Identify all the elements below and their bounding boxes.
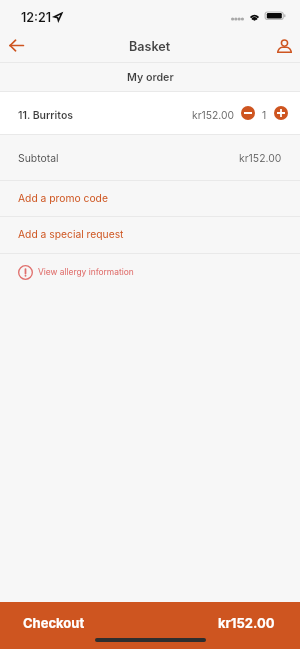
button[interactable]: Account (268, 30, 300, 62)
staticText: My order (127, 71, 174, 84)
button[interactable]: Increase quantity (274, 106, 288, 120)
staticText: Basket (129, 39, 171, 54)
staticText: 12:21 (21, 10, 52, 25)
staticText: 11. Burritos (18, 109, 74, 122)
button[interactable]: Checkout (0, 602, 300, 649)
button[interactable]: Add a promo code (0, 181, 300, 216)
staticText: 1 (262, 109, 267, 121)
staticText: kr152.00 (218, 615, 275, 631)
staticText: Checkout (23, 615, 85, 631)
staticText: View allergy information (38, 267, 134, 277)
button[interactable]: Decrease quantity (241, 106, 255, 120)
button[interactable]: View allergy information (0, 254, 300, 291)
staticText: Subtotal (18, 152, 59, 165)
button[interactable]: Back (0, 30, 32, 62)
staticText: kr152.00 (239, 152, 282, 165)
staticText: kr152.00 (192, 109, 234, 121)
button[interactable]: Add a special request (0, 217, 300, 253)
staticText: Add a special request (18, 228, 124, 240)
staticText: Add a promo code (18, 192, 108, 204)
